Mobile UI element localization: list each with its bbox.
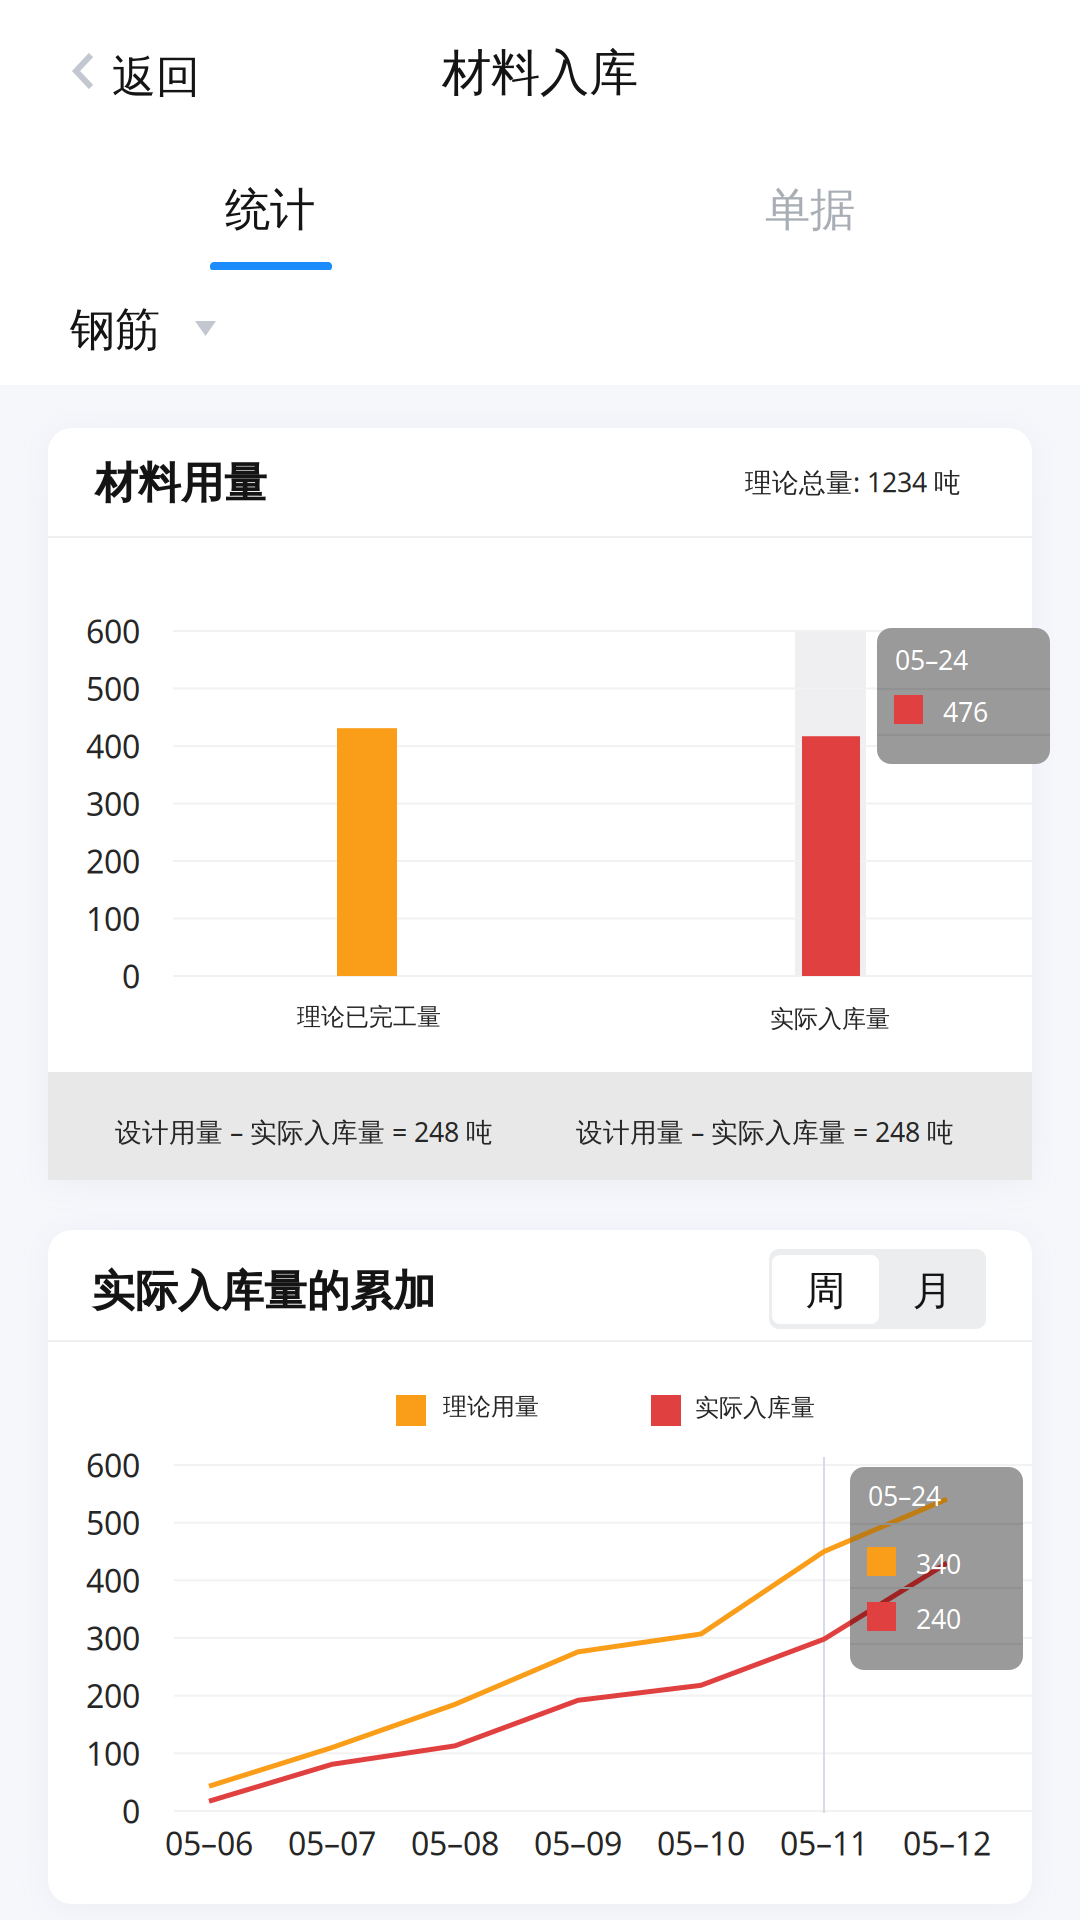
staticText: 05–09: [534, 1822, 622, 1864]
staticText: 材料用量: [95, 457, 267, 509]
button[interactable]: 返回: [62, 0, 282, 140]
button[interactable]: 周: [769, 1249, 879, 1329]
button[interactable]: 月: [879, 1249, 986, 1329]
staticText: 材料入库: [442, 43, 638, 103]
staticText: 05–24: [895, 642, 968, 677]
staticText: 05–08: [411, 1822, 499, 1864]
staticText: 单据: [765, 182, 855, 238]
staticText: 600: [86, 610, 140, 652]
staticText: 240: [916, 1601, 961, 1636]
staticText: 100: [86, 897, 140, 940]
staticText: 400: [86, 725, 140, 767]
staticText: 实际入库量的累加: [92, 1265, 436, 1317]
staticText: 钢筋: [70, 302, 160, 358]
staticText: 05–06: [165, 1822, 253, 1864]
button[interactable]: 统计: [0, 140, 540, 270]
staticText: 实际入库量: [770, 1004, 890, 1034]
staticText: 300: [86, 782, 140, 825]
staticText: 300: [86, 1617, 140, 1659]
staticText: 实际入库量: [695, 1393, 815, 1422]
staticText: 返回: [112, 50, 200, 104]
staticText: 400: [86, 1559, 140, 1602]
staticText: 05–07: [288, 1822, 376, 1864]
staticText: 05–12: [903, 1822, 991, 1864]
button[interactable]: 选择材料：钢筋: [68, 270, 268, 385]
staticText: 200: [86, 1674, 140, 1717]
staticText: 05–24: [868, 1478, 941, 1513]
staticText: 0: [122, 955, 140, 997]
staticText: 统计: [225, 182, 315, 238]
staticText: 100: [86, 1732, 140, 1775]
staticText: 476: [943, 694, 988, 729]
staticText: 05–11: [780, 1822, 868, 1864]
staticText: 周: [805, 1266, 845, 1315]
staticText: 600: [86, 1444, 140, 1486]
button[interactable]: 单据: [540, 140, 1080, 270]
staticText: 200: [86, 840, 140, 882]
staticText: 0: [122, 1790, 140, 1832]
staticText: 340: [916, 1546, 961, 1581]
staticText: 理论总量: 1234 吨: [745, 464, 961, 500]
staticText: 月: [912, 1266, 952, 1315]
staticText: 500: [86, 1501, 140, 1544]
staticText: 500: [86, 667, 140, 710]
staticText: 设计用量 – 实际入库量 = 248 吨: [115, 1114, 493, 1149]
staticText: 理论已完工量: [297, 1002, 441, 1032]
staticText: 05–10: [657, 1822, 745, 1864]
staticText: 设计用量 – 实际入库量 = 248 吨: [576, 1114, 954, 1149]
staticText: 理论用量: [443, 1392, 539, 1421]
